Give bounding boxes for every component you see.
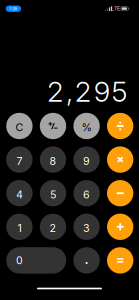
button[interactable]: 9 (73, 146, 100, 173)
staticText: 0 (16, 254, 23, 267)
button[interactable]: Plus or minus (40, 113, 66, 139)
staticText: 1 (17, 222, 21, 235)
staticText: 8 (49, 154, 56, 167)
staticText: 2 (49, 222, 56, 235)
staticText: 4 (16, 188, 23, 201)
button[interactable]: 7 (6, 146, 33, 173)
button[interactable]: 2 (40, 214, 66, 240)
button[interactable]: Equals (107, 247, 133, 274)
staticText: LTE (111, 5, 120, 12)
button[interactable]: 3 (73, 214, 100, 240)
button[interactable]: Decimal point (73, 247, 100, 274)
button[interactable]: Call in progress, 1:29 (6, 5, 21, 12)
staticText: 6 (83, 188, 90, 201)
staticText: 9 (83, 154, 90, 167)
button[interactable]: 0 (6, 247, 66, 274)
staticText: 5 (50, 188, 56, 201)
button[interactable]: C (6, 113, 33, 139)
button[interactable]: 5 (40, 180, 66, 206)
staticText: % (82, 121, 92, 134)
staticText: 7 (16, 154, 22, 167)
staticText: 9 (94, 75, 110, 109)
button[interactable]: 4 (6, 180, 33, 206)
button[interactable]: % (73, 113, 100, 139)
staticText: , (66, 75, 73, 109)
button[interactable]: 6 (73, 180, 100, 206)
button[interactable]: 8 (40, 146, 66, 173)
staticText: 2 (47, 75, 64, 109)
staticText: C (15, 121, 23, 134)
button[interactable]: Add (107, 214, 133, 240)
staticText: 2 (75, 75, 92, 109)
button[interactable]: Multiply (107, 146, 133, 173)
button[interactable]: Divide (107, 113, 133, 139)
button[interactable]: 1 (6, 214, 33, 240)
staticText: 5 (112, 75, 128, 109)
staticText: 1:29 (9, 6, 17, 11)
staticText: 3 (83, 222, 90, 235)
button[interactable]: Subtract (107, 180, 133, 206)
